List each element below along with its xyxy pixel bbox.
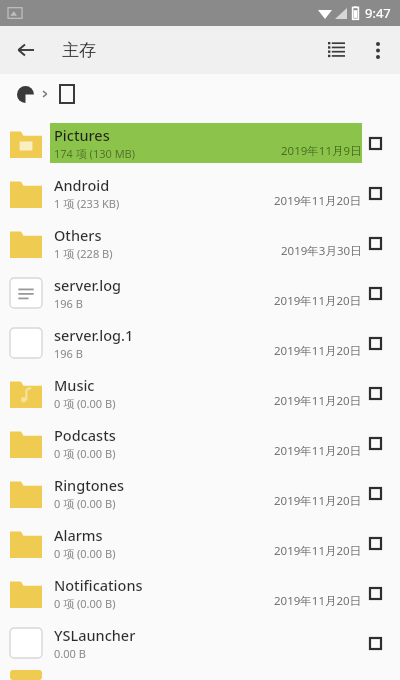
staticText: 主存 (62, 40, 96, 61)
button[interactable]: Storage root (12, 81, 38, 107)
staticText: 0 项 (0.00 B) (54, 546, 116, 561)
button[interactable]: More options (358, 30, 398, 70)
staticText: 0 项 (0.00 B) (54, 596, 116, 611)
button[interactable]: Select Pictures (362, 130, 388, 156)
staticText: 196 B (54, 296, 83, 311)
staticText: 0 项 (0.00 B) (54, 396, 116, 411)
button[interactable]: Select Notifications (362, 580, 388, 606)
button[interactable]: Back (4, 28, 48, 72)
button[interactable]: Select Android (362, 180, 388, 206)
button[interactable]: Select Others (362, 230, 388, 256)
button[interactable]: Select YSLauncher (362, 630, 388, 656)
button[interactable]: Others (0, 218, 400, 268)
staticText: 2019年11月20日 (274, 443, 362, 459)
button[interactable]: Android (0, 168, 400, 218)
button[interactable]: View mode (314, 28, 358, 72)
staticText: Ringtones (54, 475, 125, 495)
staticText: 2019年11月20日 (274, 393, 362, 409)
staticText: 2019年11月20日 (274, 493, 362, 509)
staticText: 1 项 (233 KB) (54, 196, 120, 211)
button[interactable]: Select server.log.1 (362, 330, 388, 356)
staticText: Music (54, 375, 95, 395)
staticText: Pictures (54, 125, 110, 145)
staticText: 1 项 (228 B) (54, 246, 113, 261)
staticText: 174 项 (130 MB) (54, 146, 136, 161)
staticText: 0.00 B (54, 646, 86, 661)
staticText: Alarms (54, 525, 103, 545)
staticText: 2019年11月20日 (274, 543, 362, 559)
button[interactable]: Select Music (362, 380, 388, 406)
button[interactable]: Alarms (0, 518, 400, 568)
staticText: 2019年11月20日 (274, 193, 362, 209)
button[interactable]: Music (0, 368, 400, 418)
staticText: Android (54, 175, 110, 195)
staticText: Notifications (54, 575, 143, 595)
button[interactable]: Pictures (0, 118, 400, 168)
staticText: 0 项 (0.00 B) (54, 496, 116, 511)
button[interactable]: server.log (0, 268, 400, 318)
button[interactable]: server.log.1 (0, 318, 400, 368)
staticText: 2019年11月9日 (281, 143, 362, 159)
button[interactable]: Select Ringtones (362, 480, 388, 506)
staticText: server.log (54, 275, 121, 295)
button[interactable]: Select Podcasts (362, 430, 388, 456)
staticText: 2019年11月20日 (274, 593, 362, 609)
button[interactable]: Internal storage (53, 80, 81, 108)
staticText: 2019年11月20日 (274, 293, 362, 309)
staticText: Others (54, 225, 102, 245)
staticText: server.log.1 (54, 325, 134, 345)
button[interactable]: Ringtones (0, 468, 400, 518)
staticText: 9:47 (365, 4, 391, 22)
staticText: 2019年11月20日 (274, 343, 362, 359)
button[interactable]: Select Alarms (362, 530, 388, 556)
staticText: Podcasts (54, 425, 116, 445)
button[interactable]: YSLauncher (0, 618, 400, 668)
button[interactable]: Select server.log (362, 280, 388, 306)
staticText: 196 B (54, 346, 83, 361)
button[interactable]: Podcasts (0, 418, 400, 468)
staticText: YSLauncher (54, 625, 136, 645)
staticText: 2019年3月30日 (281, 243, 362, 259)
button[interactable]: Notifications (0, 568, 400, 618)
staticText: 0 项 (0.00 B) (54, 446, 116, 461)
